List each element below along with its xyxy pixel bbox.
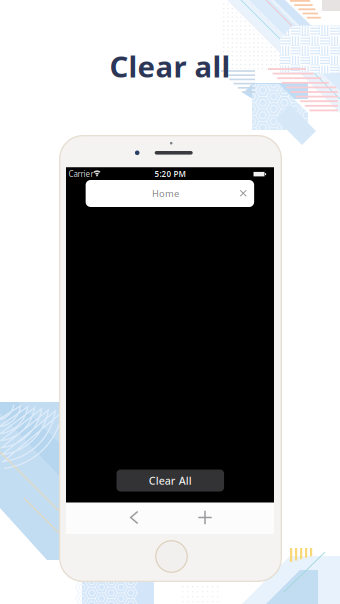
button[interactable]: Back bbox=[129, 510, 139, 524]
button[interactable]: Home bbox=[86, 180, 254, 207]
staticText: Clear all bbox=[109, 46, 230, 85]
button[interactable]: Clear All bbox=[116, 469, 224, 491]
staticText: Carrier bbox=[68, 169, 93, 179]
button[interactable]: New tab bbox=[197, 510, 212, 525]
staticText: Clear All bbox=[149, 473, 192, 488]
staticText: 5:20 PM bbox=[154, 169, 185, 179]
staticText: Home bbox=[152, 187, 179, 200]
